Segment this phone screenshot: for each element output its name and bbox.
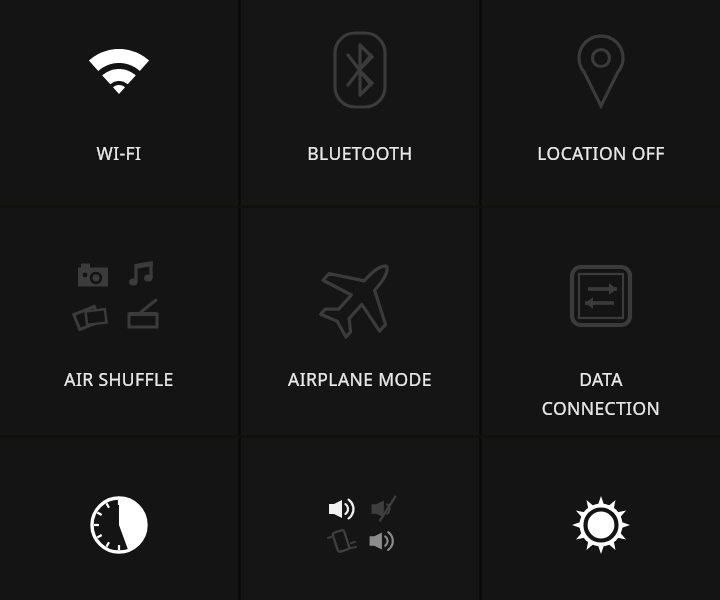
staticText: AIR SHUFFLE xyxy=(4,367,234,391)
button[interactable]: Air shuffle xyxy=(0,208,238,435)
button[interactable]: Bluetooth xyxy=(241,0,479,205)
staticText: BLUETOOTH xyxy=(245,141,475,165)
button[interactable]: Brightness xyxy=(482,438,720,600)
staticText: DATA CONNECTION xyxy=(486,367,716,420)
button[interactable]: Wi-Fi xyxy=(0,0,238,205)
button[interactable]: Location off xyxy=(482,0,720,205)
staticText: WI-FI xyxy=(4,141,234,165)
button[interactable]: Sound mode xyxy=(241,438,479,600)
staticText: LOCATION OFF xyxy=(486,141,716,165)
staticText: AIRPLANE MODE xyxy=(245,367,475,391)
button[interactable]: Driving mode xyxy=(0,438,238,600)
button[interactable]: Data connection xyxy=(482,208,720,435)
button[interactable]: Airplane mode xyxy=(241,208,479,435)
